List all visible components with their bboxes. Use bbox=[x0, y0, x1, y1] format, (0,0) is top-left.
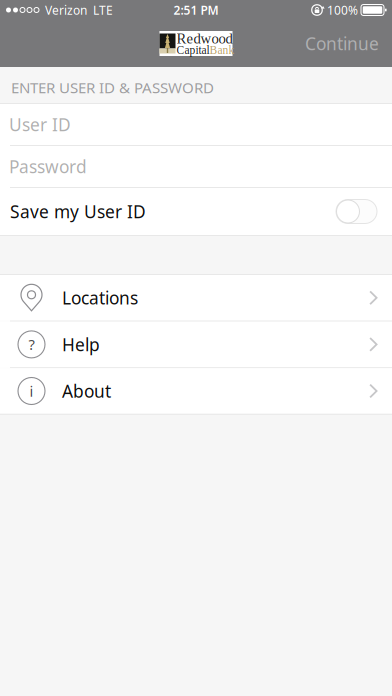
button[interactable]: Password bbox=[0, 146, 392, 187]
staticText: ENTER USER ID & PASSWORD bbox=[11, 77, 214, 98]
staticText: User ID bbox=[9, 113, 71, 136]
staticText: i bbox=[29, 381, 33, 401]
staticText: Capital bbox=[176, 44, 209, 56]
staticText: Save my User ID bbox=[10, 200, 146, 223]
staticText: ? bbox=[28, 335, 34, 354]
button[interactable]: i bbox=[0, 368, 392, 414]
button[interactable]: Continue bbox=[292, 21, 392, 65]
staticText: Continue bbox=[305, 32, 379, 55]
staticText: Locations bbox=[62, 286, 138, 309]
staticText: LTE bbox=[87, 2, 113, 18]
staticText: Bank bbox=[209, 44, 234, 56]
staticText: Verizon bbox=[39, 2, 87, 18]
button[interactable]: Save my User ID bbox=[336, 199, 377, 223]
staticText: About bbox=[62, 379, 111, 402]
button[interactable]: Locations bbox=[0, 275, 392, 321]
staticText: Password bbox=[9, 155, 87, 178]
staticText: 100% bbox=[324, 2, 361, 18]
button[interactable]: User ID bbox=[0, 104, 392, 145]
staticText: Help bbox=[62, 333, 100, 356]
staticText: Redwood bbox=[176, 30, 232, 47]
staticText: 2:51 PM bbox=[173, 2, 218, 18]
button[interactable]: ? bbox=[0, 322, 392, 367]
